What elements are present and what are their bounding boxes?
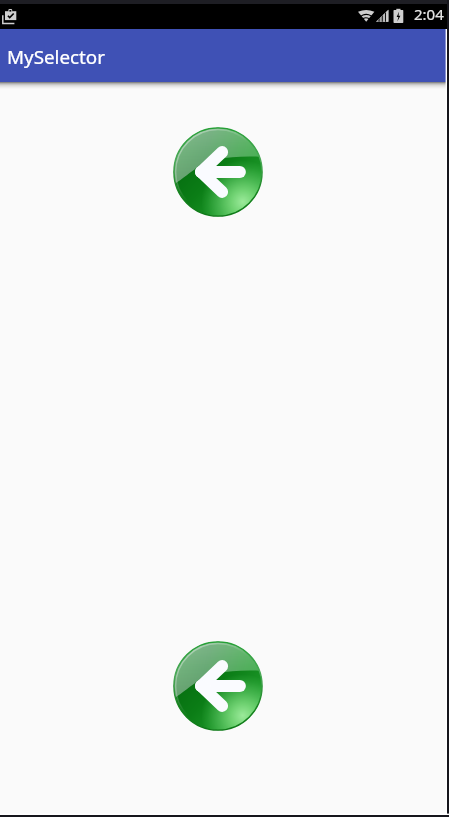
staticText: 2:04 <box>414 4 444 24</box>
button[interactable]: Back <box>173 641 263 731</box>
button[interactable]: Back <box>173 127 263 217</box>
staticText: MySelector <box>7 44 105 70</box>
